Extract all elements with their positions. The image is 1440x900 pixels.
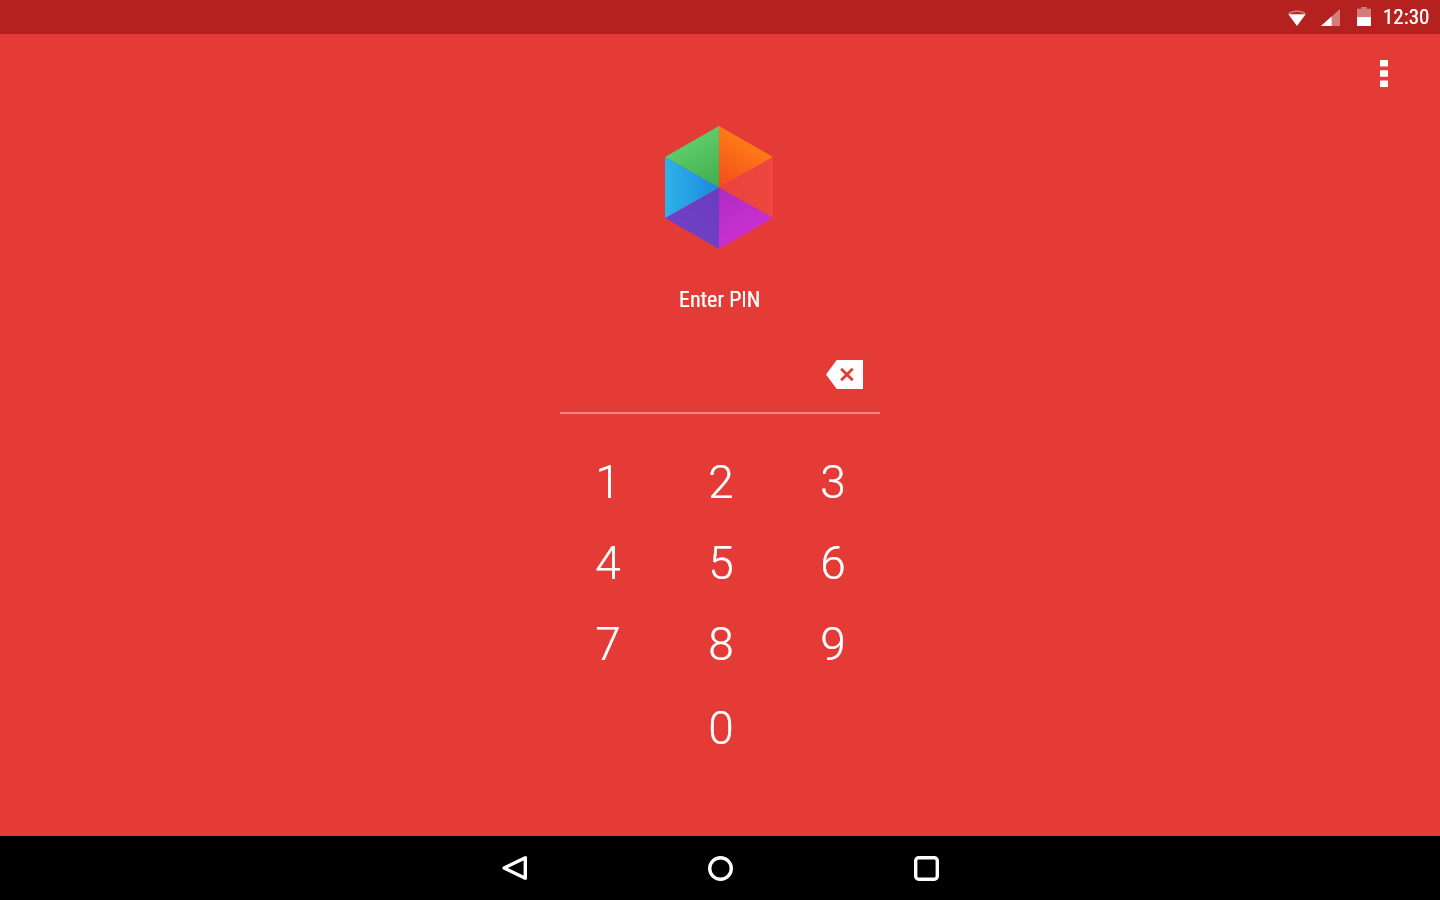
staticText: 4 bbox=[595, 536, 621, 590]
button[interactable]: 3 bbox=[793, 446, 873, 518]
staticText: 8 bbox=[708, 617, 734, 671]
staticText: Enter PIN bbox=[679, 287, 761, 313]
button[interactable]: 0 bbox=[681, 692, 761, 764]
staticText: 0 bbox=[708, 701, 734, 755]
staticText: 3 bbox=[820, 455, 846, 509]
button[interactable]: Recents bbox=[866, 836, 986, 900]
button[interactable]: 8 bbox=[681, 608, 761, 680]
button[interactable]: 2 bbox=[681, 446, 761, 518]
staticText: 5 bbox=[708, 536, 734, 590]
button[interactable]: Home bbox=[660, 836, 780, 900]
button[interactable]: 1 bbox=[568, 446, 648, 518]
button[interactable]: 9 bbox=[793, 608, 873, 680]
button[interactable]: Back bbox=[454, 836, 574, 900]
staticText: 9 bbox=[820, 617, 846, 671]
button[interactable]: More options bbox=[1352, 41, 1416, 105]
button[interactable]: 5 bbox=[681, 527, 761, 599]
button[interactable]: Backspace bbox=[808, 349, 880, 399]
staticText: 12:30 bbox=[1383, 5, 1430, 30]
staticText: 7 bbox=[595, 617, 621, 671]
button[interactable]: 7 bbox=[568, 608, 648, 680]
staticText: 2 bbox=[708, 455, 734, 509]
button[interactable]: 4 bbox=[568, 527, 648, 599]
button[interactable]: 6 bbox=[793, 527, 873, 599]
staticText: 1 bbox=[595, 455, 621, 509]
staticText: 6 bbox=[820, 536, 846, 590]
